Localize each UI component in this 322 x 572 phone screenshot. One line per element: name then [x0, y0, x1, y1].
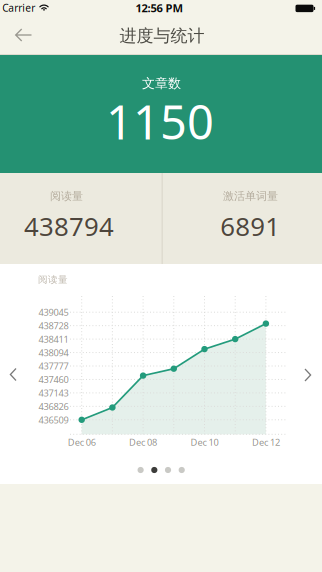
staticText: Carrier [2, 1, 35, 15]
button[interactable]: Previous period [0, 363, 26, 385]
staticText: 阅读量 [50, 189, 83, 203]
staticText: 437143 [38, 387, 68, 399]
staticText: 进度与统计 [119, 25, 204, 46]
button[interactable]: Next period [295, 364, 321, 386]
button[interactable]: Back [0, 19, 44, 53]
staticText: 1150 [106, 89, 214, 153]
staticText: Dec 08 [129, 436, 157, 449]
staticText: Dec 10 [190, 436, 218, 449]
staticText: 阅读量 [38, 273, 68, 285]
staticText: 436509 [38, 413, 68, 426]
staticText: Dec 12 [252, 436, 280, 449]
staticText: 文章数 [142, 75, 181, 92]
staticText: Dec 06 [68, 436, 96, 449]
staticText: 436826 [38, 400, 68, 413]
staticText: 12:56 PM [135, 0, 183, 15]
staticText: 438094 [38, 346, 68, 359]
staticText: 437777 [38, 360, 68, 372]
staticText: 439045 [38, 306, 68, 319]
staticText: 438411 [38, 333, 68, 345]
staticText: 437460 [38, 373, 68, 386]
staticText: 438728 [38, 319, 68, 332]
staticText: 激活单词量 [223, 189, 278, 203]
staticText: 6891 [220, 208, 280, 243]
staticText: 438794 [24, 208, 114, 243]
